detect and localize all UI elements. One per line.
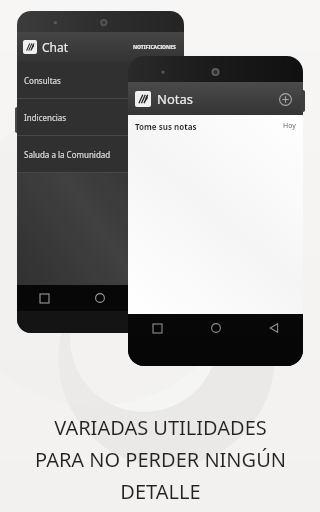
staticText: Consultas bbox=[24, 75, 61, 86]
button[interactable]: Tome sus notas bbox=[128, 115, 303, 137]
staticText: Tome sus notas bbox=[135, 121, 197, 132]
staticText: Indicencias bbox=[24, 112, 67, 123]
button[interactable]: NOTIFICACIONES bbox=[131, 44, 178, 51]
staticText: NOTIFICACIONES bbox=[133, 44, 176, 51]
staticText: Notas bbox=[157, 90, 193, 108]
other: App logo bbox=[137, 93, 149, 105]
staticText: Saluda a la Comunidad bbox=[24, 149, 111, 160]
button[interactable]: Add note bbox=[274, 88, 296, 110]
staticText: VARIADAS UTILIDADES bbox=[54, 414, 267, 441]
button[interactable]: Recents bbox=[17, 285, 72, 311]
button[interactable]: Back bbox=[245, 314, 303, 342]
button[interactable]: Saluda a la Comunidad bbox=[17, 136, 184, 173]
button[interactable]: Consultas bbox=[17, 62, 184, 99]
staticText: PARA NO PERDER NINGÚN bbox=[35, 446, 286, 473]
button[interactable]: Home bbox=[72, 285, 128, 311]
button[interactable]: App logo bbox=[17, 32, 184, 62]
button[interactable]: App logo bbox=[128, 82, 303, 115]
button[interactable]: Home bbox=[187, 314, 245, 342]
staticText: Hoy bbox=[283, 121, 296, 131]
button[interactable]: Indicencias bbox=[17, 99, 184, 136]
button[interactable]: Recents bbox=[128, 314, 187, 342]
staticText: DETALLE bbox=[120, 478, 201, 505]
staticText: Chat bbox=[42, 39, 69, 55]
other: App logo bbox=[25, 42, 35, 52]
